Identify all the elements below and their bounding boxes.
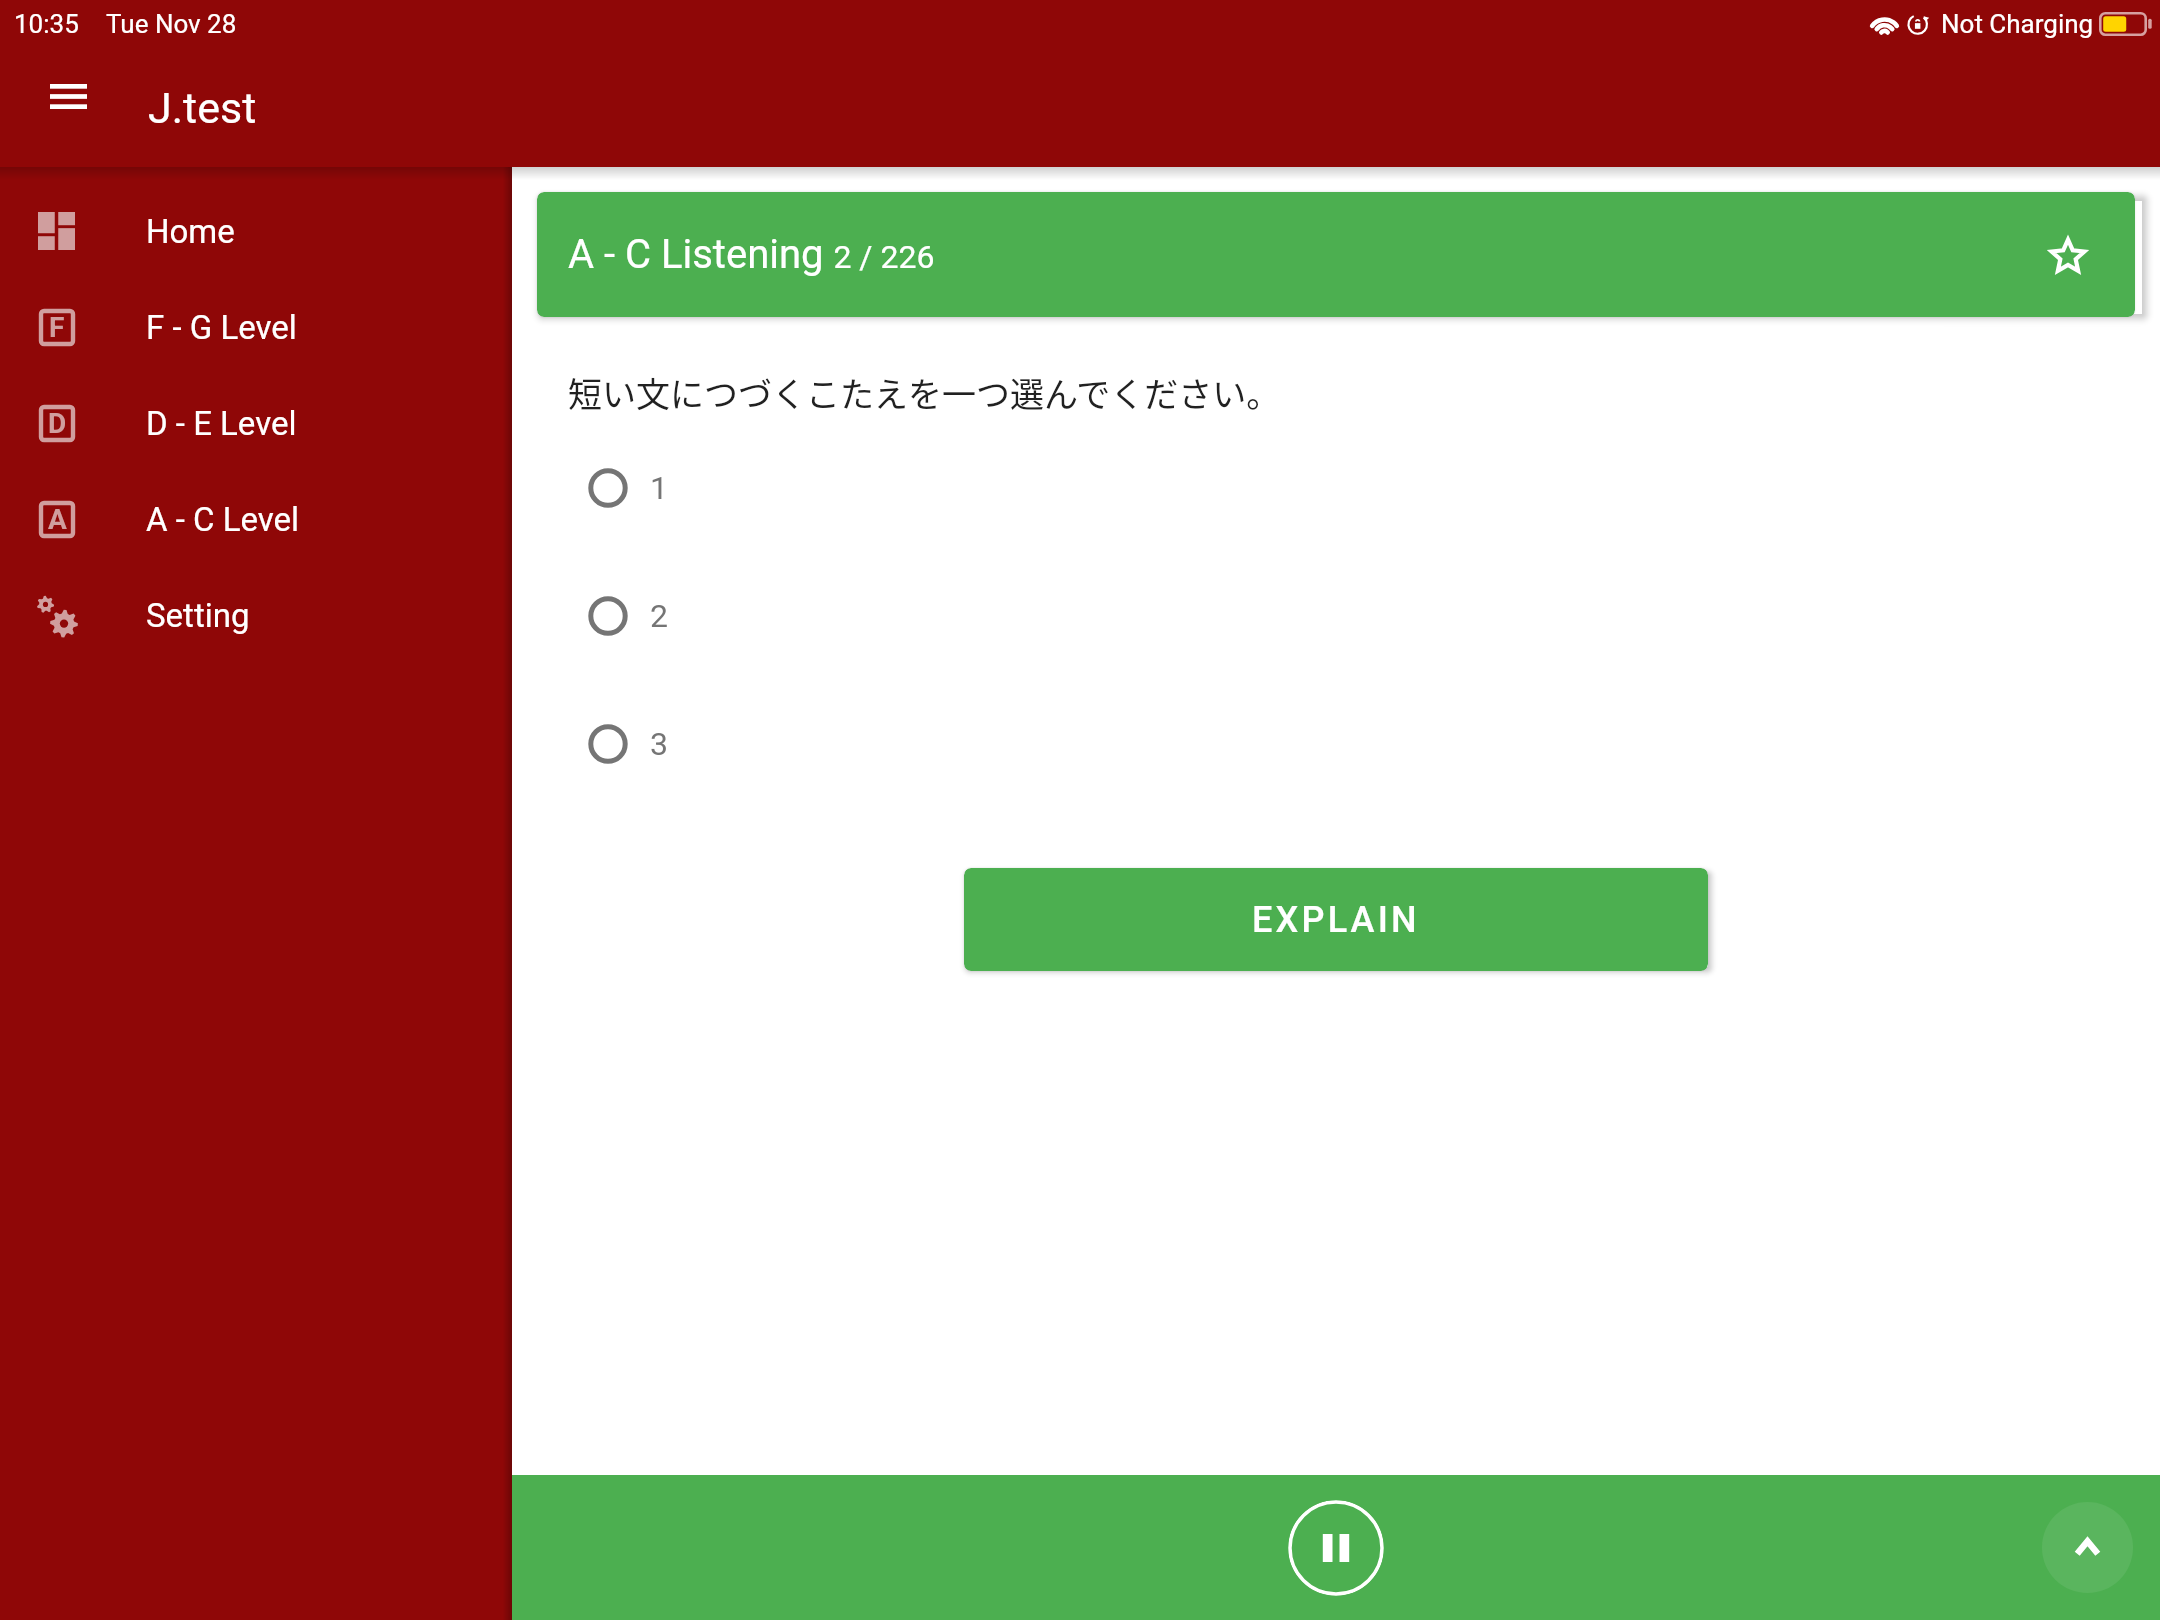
button[interactable]: Expand player bbox=[2042, 1502, 2133, 1593]
staticText: Setting bbox=[146, 596, 250, 635]
button[interactable]: Add to favourites bbox=[2047, 234, 2089, 276]
button[interactable]: EXPLAIN bbox=[964, 868, 1708, 971]
staticText: Tue Nov 28 bbox=[106, 9, 237, 39]
button[interactable]: D bbox=[0, 375, 512, 471]
button[interactable]: 2 bbox=[512, 552, 2160, 680]
staticText: A bbox=[48, 503, 67, 536]
button[interactable]: 1 bbox=[512, 424, 2160, 552]
staticText: J.test bbox=[148, 83, 257, 133]
button[interactable]: Open navigation menu bbox=[24, 52, 112, 140]
staticText: F - G Level bbox=[146, 308, 297, 347]
staticText: Home bbox=[146, 212, 235, 251]
staticText: 1 bbox=[650, 469, 668, 507]
staticText: 短い文につづくこたえを一つ選んでください。 bbox=[568, 368, 1281, 417]
staticText: 10:35 bbox=[14, 9, 79, 39]
staticText: A - C Level bbox=[146, 500, 300, 539]
staticText: F bbox=[49, 311, 65, 344]
button[interactable]: F bbox=[0, 279, 512, 375]
button[interactable]: 3 bbox=[512, 680, 2160, 808]
staticText: Not Charging bbox=[1941, 9, 2094, 39]
button[interactable]: Pause bbox=[1288, 1500, 1384, 1596]
staticText: D bbox=[48, 407, 67, 440]
button[interactable]: A bbox=[0, 471, 512, 567]
staticText: 2 bbox=[650, 597, 668, 635]
button[interactable]: Setting bbox=[0, 567, 512, 663]
button[interactable]: A - C Listening 2 / 226 bbox=[537, 192, 2135, 317]
staticText: 3 bbox=[650, 725, 668, 763]
staticText: A - C Listening 2 / 226 bbox=[568, 231, 935, 278]
staticText: EXPLAIN bbox=[1252, 899, 1420, 941]
staticText: D - E Level bbox=[146, 404, 297, 443]
button[interactable]: Home bbox=[0, 183, 512, 279]
